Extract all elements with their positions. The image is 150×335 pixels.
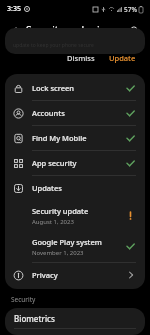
staticText: Security: [11, 295, 36, 304]
button[interactable]: Privacy: [5, 263, 145, 287]
button[interactable]: Dismiss: [62, 51, 100, 65]
button[interactable]: Google Play system update: [5, 231, 145, 262]
button[interactable]: App security: [5, 151, 145, 175]
staticText: Dismiss: [67, 53, 95, 63]
staticText: Security and privacy: [26, 23, 126, 37]
button[interactable]: Find My Mobile: [5, 126, 145, 150]
button[interactable]: Search: [126, 22, 142, 38]
staticText: 3:35: [7, 4, 21, 14]
staticText: Updates: [32, 183, 125, 193]
button[interactable]: Security update: [5, 200, 145, 231]
button[interactable]: Updates: [5, 176, 145, 200]
staticText: Privacy: [32, 270, 126, 280]
staticText: Lock screen: [32, 83, 125, 93]
staticText: Security update: [32, 206, 89, 216]
staticText: update to keep your phone secure: [13, 42, 94, 49]
button[interactable]: Samsung Pass: [5, 329, 145, 335]
staticText: Find My Mobile: [32, 133, 125, 143]
staticText: Update: [109, 53, 136, 63]
button[interactable]: Back: [6, 22, 22, 38]
staticText: November 1, 2023: [32, 249, 84, 257]
staticText: August 1, 2023: [32, 218, 74, 226]
button[interactable]: Biometrics: [5, 308, 145, 328]
staticText: Accounts: [32, 108, 125, 118]
staticText: Biometrics: [14, 313, 55, 324]
button[interactable]: Update: [104, 51, 141, 65]
button[interactable]: Accounts: [5, 101, 145, 125]
staticText: 57%: [124, 5, 137, 14]
staticText: Google Play system update: [32, 237, 125, 247]
staticText: App security: [32, 158, 125, 168]
button[interactable]: Lock screen: [5, 76, 145, 100]
